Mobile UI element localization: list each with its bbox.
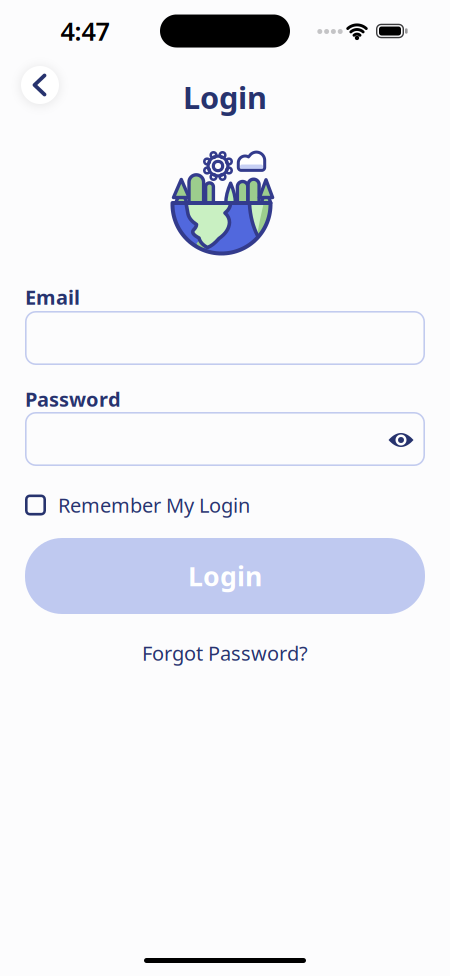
staticText: 4:47 — [60, 14, 109, 48]
staticText: Password — [25, 386, 121, 412]
staticText: Login — [188, 558, 262, 594]
button[interactable] — [25, 412, 425, 466]
button[interactable]: Forgot Password? — [142, 640, 308, 666]
button[interactable]: Remember My Login — [25, 492, 425, 518]
button[interactable] — [21, 66, 59, 104]
staticText: Forgot Password? — [142, 640, 308, 666]
button[interactable]: Login — [25, 538, 425, 614]
button[interactable] — [25, 311, 425, 365]
staticText: Email — [25, 284, 80, 310]
staticText: Login — [183, 77, 267, 117]
button[interactable] — [386, 425, 416, 455]
staticText: Remember My Login — [58, 492, 250, 518]
